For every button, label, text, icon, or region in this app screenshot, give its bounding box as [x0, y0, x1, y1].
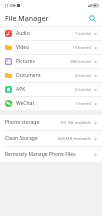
button[interactable]: Pictures [0, 55, 102, 68]
staticText: File Manager [5, 14, 49, 24]
staticText: Video [16, 44, 72, 51]
staticText: Audio [16, 30, 74, 37]
button[interactable]: WeChat [0, 97, 102, 110]
staticText: Pictures [16, 58, 70, 65]
staticText: 3 item(s) [74, 73, 91, 78]
staticText: WeChat [16, 100, 74, 107]
staticText: APK [16, 86, 74, 93]
button[interactable]: APK [0, 83, 102, 96]
staticText: Remotely Manage Phone Files [5, 151, 94, 158]
button[interactable]: Clean Storage [0, 131, 102, 146]
staticText: 2 item(s) [74, 87, 91, 92]
staticText: 494 MB cleanable [57, 136, 91, 141]
staticText: Clean Storage [5, 135, 57, 142]
staticText: 11:05 [4, 3, 15, 8]
button[interactable]: Remotely Manage Phone Files [0, 147, 102, 162]
button[interactable]: Phone storage [0, 115, 102, 130]
staticText: Phone storage [5, 119, 59, 126]
staticText: 15 item(s) [72, 45, 91, 50]
staticText: 380 item(s) [70, 59, 91, 64]
staticText: 1 item(s) [74, 101, 91, 106]
button[interactable]: Document [0, 69, 102, 82]
staticText: Document [16, 72, 74, 79]
staticText: 101 GB available [59, 120, 91, 125]
staticText: 1 item(s) [74, 31, 91, 36]
button[interactable]: Audio [0, 27, 102, 40]
button[interactable]: Video [0, 41, 102, 54]
button[interactable]: Search [87, 13, 98, 24]
